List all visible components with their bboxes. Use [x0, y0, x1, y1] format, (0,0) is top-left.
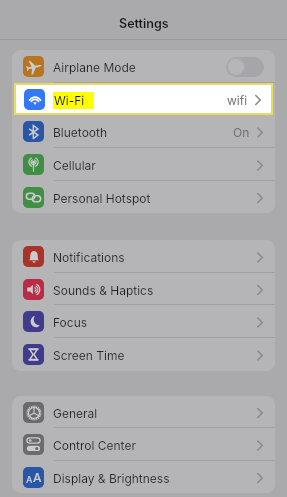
- staticText: Sounds & Haptics: [53, 283, 154, 298]
- staticText: On: [233, 125, 250, 140]
- button[interactable]: Airplane Mode: [12, 50, 275, 83]
- button[interactable]: Airplane Mode toggle: [226, 57, 264, 77]
- button[interactable]: General: [12, 396, 275, 428]
- staticText: A: [26, 474, 33, 485]
- button[interactable]: Wi-Fi: [14, 83, 273, 115]
- staticText: Notifications: [53, 250, 125, 265]
- staticText: Control Center: [53, 438, 136, 453]
- button[interactable]: Notifications: [12, 240, 275, 273]
- staticText: General: [53, 406, 98, 421]
- staticText: Focus: [53, 315, 88, 330]
- button[interactable]: Bluetooth: [12, 115, 275, 148]
- staticText: Display & Brightness: [53, 471, 170, 486]
- button[interactable]: A: [12, 461, 275, 493]
- button[interactable]: Screen Time: [12, 338, 275, 371]
- staticText: A: [33, 470, 42, 485]
- staticText: Screen Time: [53, 348, 125, 363]
- staticText: Personal Hotspot: [53, 191, 151, 206]
- button[interactable]: Focus: [12, 305, 275, 338]
- button[interactable]: Cellular: [12, 148, 275, 181]
- staticText: Cellular: [53, 158, 96, 173]
- button[interactable]: Personal Hotspot: [12, 181, 275, 213]
- staticText: Settings: [119, 16, 169, 31]
- staticText: wifi: [227, 93, 248, 108]
- staticText: Airplane Mode: [53, 60, 136, 75]
- staticText: Wi-Fi: [54, 93, 85, 108]
- staticText: Bluetooth: [53, 125, 108, 140]
- button[interactable]: Control Center: [12, 428, 275, 461]
- button[interactable]: Sounds & Haptics: [12, 273, 275, 305]
